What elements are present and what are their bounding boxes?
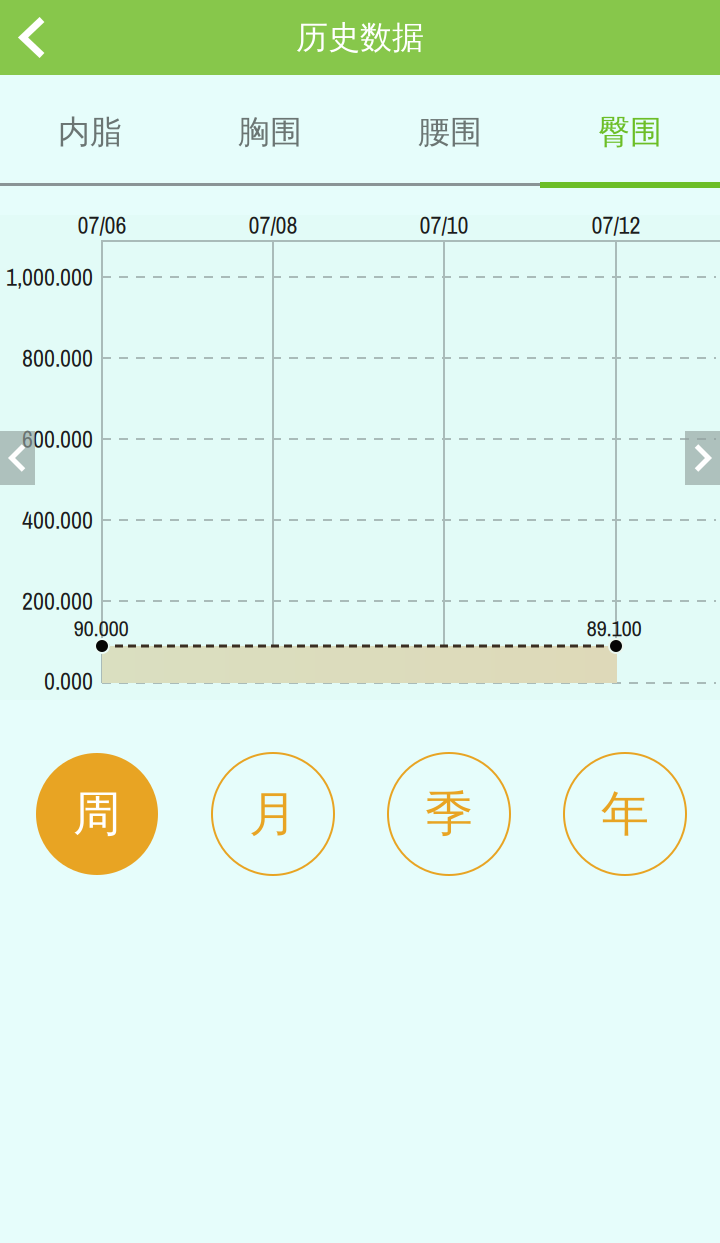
button[interactable]: 年: [537, 734, 713, 894]
button[interactable]: 月: [185, 734, 361, 894]
staticText: 90.000: [73, 613, 128, 643]
button[interactable]: 胸围: [180, 75, 360, 197]
staticText: 季: [425, 784, 473, 843]
button[interactable]: 季: [361, 734, 537, 894]
staticText: 月: [249, 784, 297, 843]
staticText: 600.000: [22, 423, 93, 455]
button[interactable]: 内脂: [0, 75, 180, 197]
staticText: 1,000.000: [6, 261, 93, 293]
staticText: 400.000: [22, 504, 93, 536]
button[interactable]: 腰围: [360, 75, 540, 197]
staticText: 89.100: [586, 613, 641, 643]
button[interactable]: Back: [0, 0, 66, 75]
staticText: 07/10: [419, 209, 468, 241]
staticText: 0.000: [44, 665, 93, 697]
staticText: 年: [601, 784, 649, 843]
staticText: 历史数据: [296, 18, 424, 57]
staticText: 内脂: [58, 112, 122, 152]
staticText: 07/08: [248, 209, 297, 241]
staticText: 07/12: [591, 209, 640, 241]
button[interactable]: Previous page: [0, 431, 35, 485]
staticText: 200.000: [22, 585, 93, 617]
button[interactable]: 周: [9, 734, 185, 894]
button[interactable]: 臀围: [540, 75, 720, 197]
button[interactable]: Next page: [685, 431, 720, 485]
staticText: 胸围: [238, 112, 302, 152]
staticText: 腰围: [418, 112, 482, 152]
staticText: 800.000: [22, 342, 93, 374]
staticText: 07/06: [77, 209, 126, 241]
staticText: 周: [73, 784, 121, 843]
staticText: 臀围: [598, 112, 662, 152]
